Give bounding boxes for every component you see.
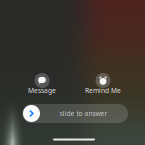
- staticText: Message: [28, 86, 56, 95]
- staticText: slide to answer: [59, 109, 107, 118]
- button[interactable]: [95, 73, 110, 88]
- button[interactable]: slide to answer: [22, 104, 128, 123]
- staticText: Remind Me: [85, 86, 121, 95]
- button[interactable]: [34, 73, 49, 88]
